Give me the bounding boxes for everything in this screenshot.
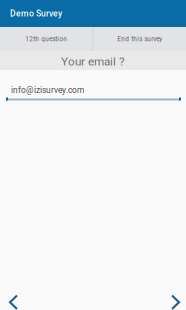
button[interactable]: End this survey [93, 27, 186, 51]
staticText: info@izisurvey.com [11, 85, 84, 95]
staticText: End this survey [117, 35, 162, 43]
staticText: Your email ? [61, 55, 125, 68]
staticText: Demo Survey [10, 8, 62, 19]
button[interactable]: Previous question [0, 283, 31, 310]
staticText: 12th question [25, 35, 67, 43]
button[interactable]: Next question [158, 283, 186, 310]
button[interactable]: 12th question [0, 27, 92, 51]
